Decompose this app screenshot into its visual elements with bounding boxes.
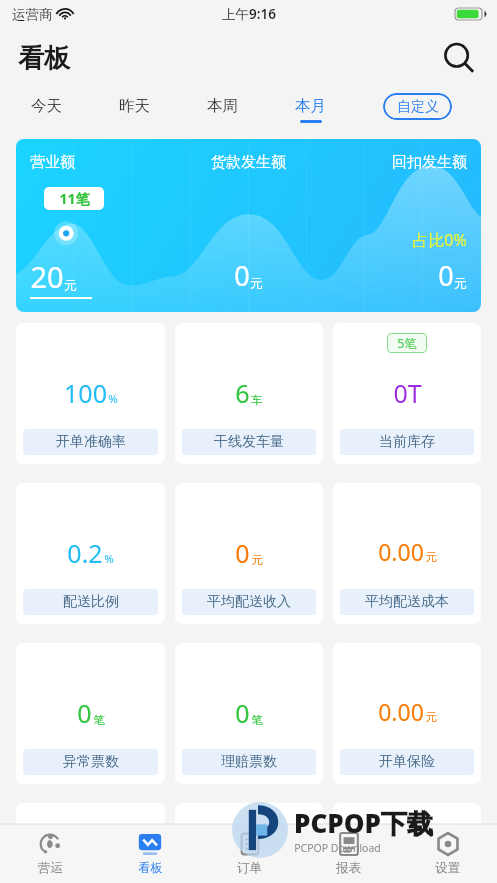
staticText: 平均配送成本	[365, 593, 449, 611]
staticText: 占比0%	[412, 229, 467, 251]
staticText: 6	[235, 376, 250, 410]
staticText: 车	[251, 393, 263, 407]
staticText: 本周	[207, 96, 238, 116]
button[interactable]: 自定义	[383, 93, 452, 120]
staticText: 看板	[138, 860, 163, 876]
staticText: 5笔	[397, 335, 417, 352]
staticText: 开单保险	[379, 753, 435, 771]
staticText: 设置	[435, 860, 460, 876]
button[interactable]: 今天	[24, 88, 68, 130]
button[interactable]: 设置	[398, 824, 497, 883]
staticText: 报表	[336, 860, 361, 876]
button[interactable]: 0	[16, 643, 165, 784]
button[interactable]	[333, 803, 481, 883]
button[interactable]: 0.00	[333, 643, 481, 784]
staticText: %	[104, 551, 114, 567]
button[interactable]: 看板	[100, 824, 200, 883]
staticText: 元	[251, 553, 263, 567]
button[interactable]: 0.2	[16, 483, 165, 624]
button[interactable]	[16, 803, 165, 883]
staticText: 上午9:16	[222, 5, 276, 23]
staticText: 11笔	[59, 189, 90, 208]
staticText: 元	[250, 275, 263, 291]
button[interactable]: 本周	[200, 88, 244, 130]
staticText: 今天	[31, 96, 62, 116]
staticText: 0	[234, 257, 250, 294]
staticText: 营运	[38, 860, 63, 876]
staticText: 0.2	[67, 536, 103, 570]
staticText: 回扣发生额	[392, 153, 467, 172]
staticText: 元	[425, 550, 437, 564]
button[interactable]: 报表	[299, 824, 398, 883]
staticText: 货款发生额	[211, 153, 286, 172]
staticText: 订单	[237, 860, 262, 876]
staticText: 开单准确率	[56, 433, 126, 451]
staticText: 配送比例	[63, 593, 119, 611]
button[interactable]: 0.00	[333, 483, 481, 624]
button[interactable]: 营运	[0, 824, 100, 883]
staticText: 平均配送收入	[207, 593, 291, 611]
staticText: %	[108, 391, 118, 407]
staticText: 本月	[295, 96, 326, 116]
button[interactable]: 6	[175, 323, 323, 464]
staticText: 元	[425, 710, 437, 724]
staticText: 0	[77, 696, 92, 730]
staticText: 营业额	[30, 153, 75, 172]
staticText: 100	[64, 376, 107, 410]
staticText: 0T	[393, 376, 422, 410]
staticText: 20	[30, 257, 64, 296]
staticText: 0	[235, 536, 250, 570]
staticText: 元	[64, 277, 77, 293]
staticText: PCPOP Download	[294, 841, 381, 855]
staticText: 理赔票数	[221, 753, 277, 771]
staticText: 运营商	[12, 6, 53, 23]
button[interactable]: 本月	[288, 88, 332, 130]
staticText: 0.00	[378, 536, 424, 567]
button[interactable]: 0	[175, 483, 323, 624]
button[interactable]: 100	[16, 323, 165, 464]
staticText: 当前库存	[379, 433, 435, 451]
button[interactable]: 营业额	[16, 139, 481, 312]
staticText: 笔	[93, 713, 105, 727]
staticText: 自定义	[397, 98, 439, 116]
button[interactable]: 订单	[200, 824, 299, 883]
staticText: 0	[438, 257, 454, 294]
button[interactable]	[175, 803, 323, 883]
staticText: PCPOP下载	[294, 805, 433, 841]
staticText: 看板	[18, 42, 70, 75]
staticText: 干线发车量	[214, 433, 284, 451]
button[interactable]: 0	[175, 643, 323, 784]
staticText: 笔	[251, 713, 263, 727]
staticText: 异常票数	[63, 753, 119, 771]
staticText: 昨天	[119, 96, 150, 116]
staticText: 元	[454, 275, 467, 291]
button[interactable]: 5笔	[333, 323, 481, 464]
staticText: 0	[235, 696, 250, 730]
button[interactable]: 昨天	[112, 88, 156, 130]
button[interactable]: Search	[439, 38, 479, 78]
staticText: 0.00	[378, 696, 424, 727]
